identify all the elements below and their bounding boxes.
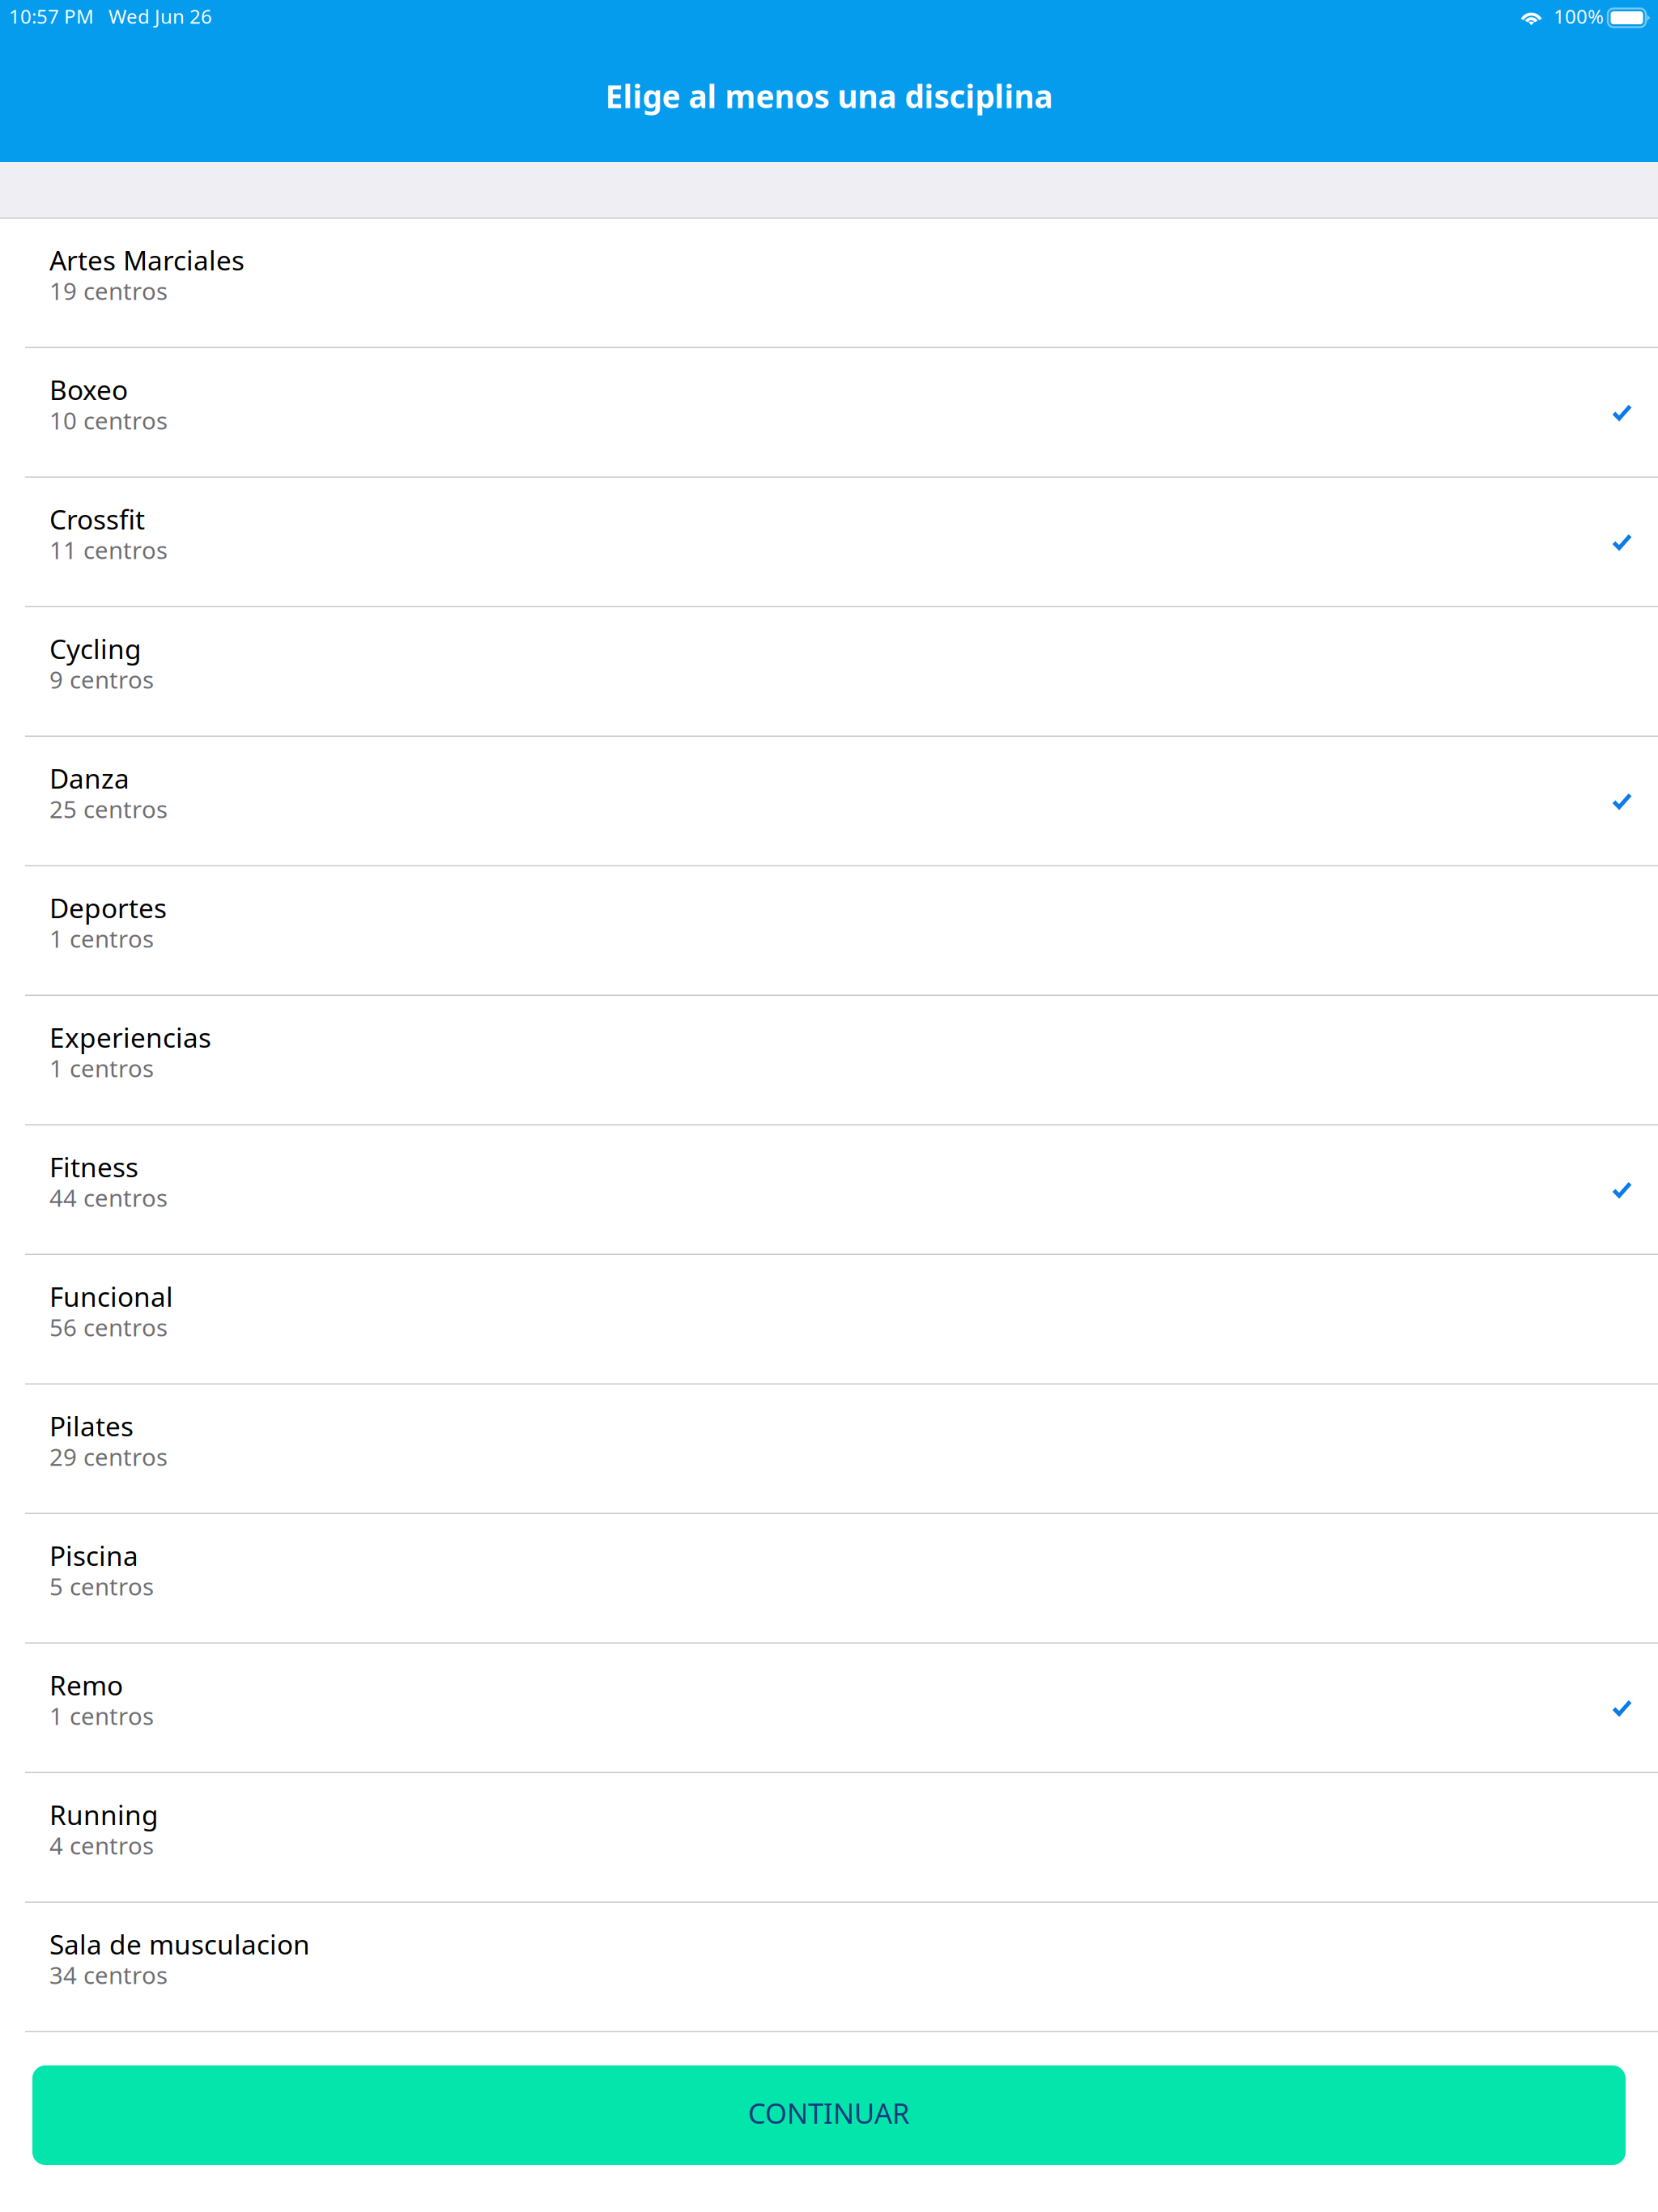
staticText: 25 centros: [49, 793, 168, 825]
staticText: Deportes: [49, 890, 167, 926]
staticText: Experiencias: [49, 1019, 211, 1055]
staticText: 29 centros: [49, 1441, 168, 1473]
staticText: 10 centros: [49, 405, 168, 436]
staticText: Crossfit: [49, 501, 145, 537]
staticText: 34 centros: [49, 1959, 168, 1991]
button[interactable]: Funcional: [0, 1255, 1658, 1383]
button[interactable]: CONTINUAR: [32, 2065, 1626, 2165]
staticText: 1 centros: [49, 1700, 154, 1732]
staticText: Cycling: [49, 631, 142, 667]
staticText: 4 centros: [49, 1830, 154, 1861]
button[interactable]: Piscina: [0, 1514, 1658, 1642]
button[interactable]: Running: [0, 1773, 1658, 1901]
staticText: 100%: [1554, 3, 1604, 29]
staticText: 5 centros: [49, 1571, 154, 1602]
button[interactable]: Fitness: [0, 1125, 1658, 1254]
staticText: 19 centros: [49, 275, 168, 307]
staticText: Fitness: [49, 1149, 138, 1185]
staticText: 1 centros: [49, 923, 154, 954]
staticText: 10:57 PM Wed Jun 26: [9, 3, 212, 29]
staticText: Sala de musculacion: [49, 1926, 310, 1962]
button[interactable]: Remo: [0, 1644, 1658, 1772]
staticText: Piscina: [49, 1538, 138, 1573]
staticText: 9 centros: [49, 664, 154, 695]
button[interactable]: Cycling: [0, 607, 1658, 736]
staticText: Running: [49, 1797, 159, 1833]
staticText: 56 centros: [49, 1311, 168, 1343]
staticText: Funcional: [49, 1278, 173, 1314]
button[interactable]: Experiencias: [0, 996, 1658, 1124]
button[interactable]: Artes Marciales: [0, 219, 1658, 347]
staticText: Boxeo: [49, 372, 128, 408]
staticText: Remo: [49, 1667, 123, 1703]
staticText: Elige al menos una disciplina: [605, 75, 1053, 117]
button[interactable]: Boxeo: [0, 348, 1658, 476]
staticText: 11 centros: [49, 534, 168, 566]
staticText: CONTINUAR: [748, 2094, 910, 2131]
button[interactable]: Sala de musculacion: [0, 1903, 1658, 2031]
staticText: 44 centros: [49, 1182, 168, 1214]
button[interactable]: Crossfit: [0, 478, 1658, 606]
button[interactable]: Deportes: [0, 866, 1658, 995]
staticText: Danza: [49, 760, 130, 796]
staticText: Artes Marciales: [49, 242, 244, 278]
button[interactable]: Danza: [0, 737, 1658, 865]
staticText: Pilates: [49, 1408, 134, 1444]
button[interactable]: Pilates: [0, 1385, 1658, 1513]
staticText: 1 centros: [49, 1052, 154, 1084]
